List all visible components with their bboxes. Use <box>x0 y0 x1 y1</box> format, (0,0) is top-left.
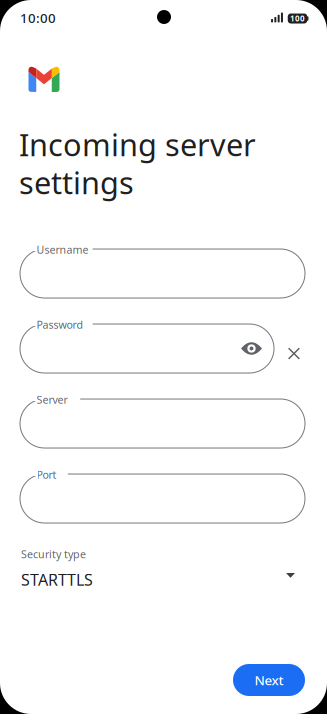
button[interactable]: Password <box>20 324 274 373</box>
button[interactable]: Username <box>20 249 305 298</box>
staticText: Password <box>36 317 83 332</box>
staticText: STARTTLS <box>21 569 93 590</box>
staticText: Next <box>254 671 283 689</box>
staticText: settings <box>19 162 134 203</box>
button[interactable]: Next <box>233 664 305 696</box>
button[interactable]: Server <box>20 399 305 448</box>
button[interactable]: Security type <box>21 547 306 593</box>
staticText: Server <box>36 392 67 407</box>
staticText: Security type <box>21 547 86 561</box>
button[interactable]: Clear <box>280 339 308 368</box>
staticText: Username <box>36 242 88 257</box>
staticText: Incoming server <box>19 124 256 165</box>
staticText: 10:00 <box>20 9 56 27</box>
staticText: Port <box>36 467 56 482</box>
staticText: 100 <box>290 13 305 24</box>
button[interactable]: Port <box>20 474 305 523</box>
